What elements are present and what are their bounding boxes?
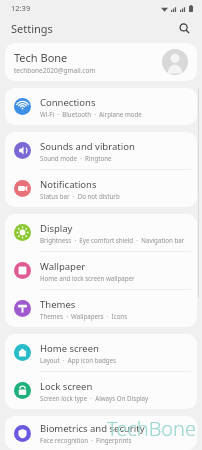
staticText: Brightness · Eye comfort shield · Naviga… — [40, 236, 185, 244]
staticText: Connections — [40, 96, 96, 109]
button[interactable]: Biometrics and security — [5, 416, 197, 450]
staticText: Wallpaper — [40, 260, 86, 273]
button[interactable]: Lock screen — [5, 372, 197, 409]
staticText: 12:39 — [11, 3, 31, 13]
staticText: Sound mode · Ringtone — [40, 154, 112, 162]
staticText: Home and lock screen wallpaper — [40, 274, 135, 282]
button[interactable]: Display — [5, 214, 197, 251]
staticText: techbone2020@gmail.com — [14, 66, 96, 75]
button[interactable]: Home screen — [5, 334, 197, 371]
staticText: Wi-Fi · Bluetooth · Airplane mode — [40, 110, 142, 118]
button[interactable]: Tech Bone — [5, 43, 197, 81]
button[interactable]: Sounds and vibration — [5, 132, 197, 169]
staticText: Layout · App icon badges — [40, 356, 117, 364]
button[interactable]: Profile — [162, 49, 188, 75]
button[interactable]: Search — [174, 18, 194, 38]
button[interactable]: Themes — [5, 290, 197, 327]
staticText: Tech Bone — [14, 50, 68, 65]
button[interactable]: Connections — [5, 88, 197, 125]
staticText: Lock screen — [40, 380, 93, 393]
staticText: Settings — [11, 21, 53, 36]
staticText: Status bar · Do not disturb — [40, 192, 120, 200]
staticText: Face recognition · Fingerprints — [40, 436, 132, 444]
staticText: Biometrics and security — [40, 422, 145, 435]
staticText: Display — [40, 222, 73, 235]
staticText: Sounds and vibration — [40, 140, 135, 153]
staticText: Themes — [40, 298, 76, 311]
staticText: TechBone — [107, 415, 197, 442]
staticText: Themes · Wallpapers · Icons — [40, 312, 128, 320]
staticText: Notifications — [40, 178, 97, 191]
button[interactable]: Wallpaper — [5, 252, 197, 289]
button[interactable]: Notifications — [5, 170, 197, 207]
staticText: Home screen — [40, 342, 99, 355]
staticText: Screen lock type · Always On Display — [40, 394, 149, 402]
